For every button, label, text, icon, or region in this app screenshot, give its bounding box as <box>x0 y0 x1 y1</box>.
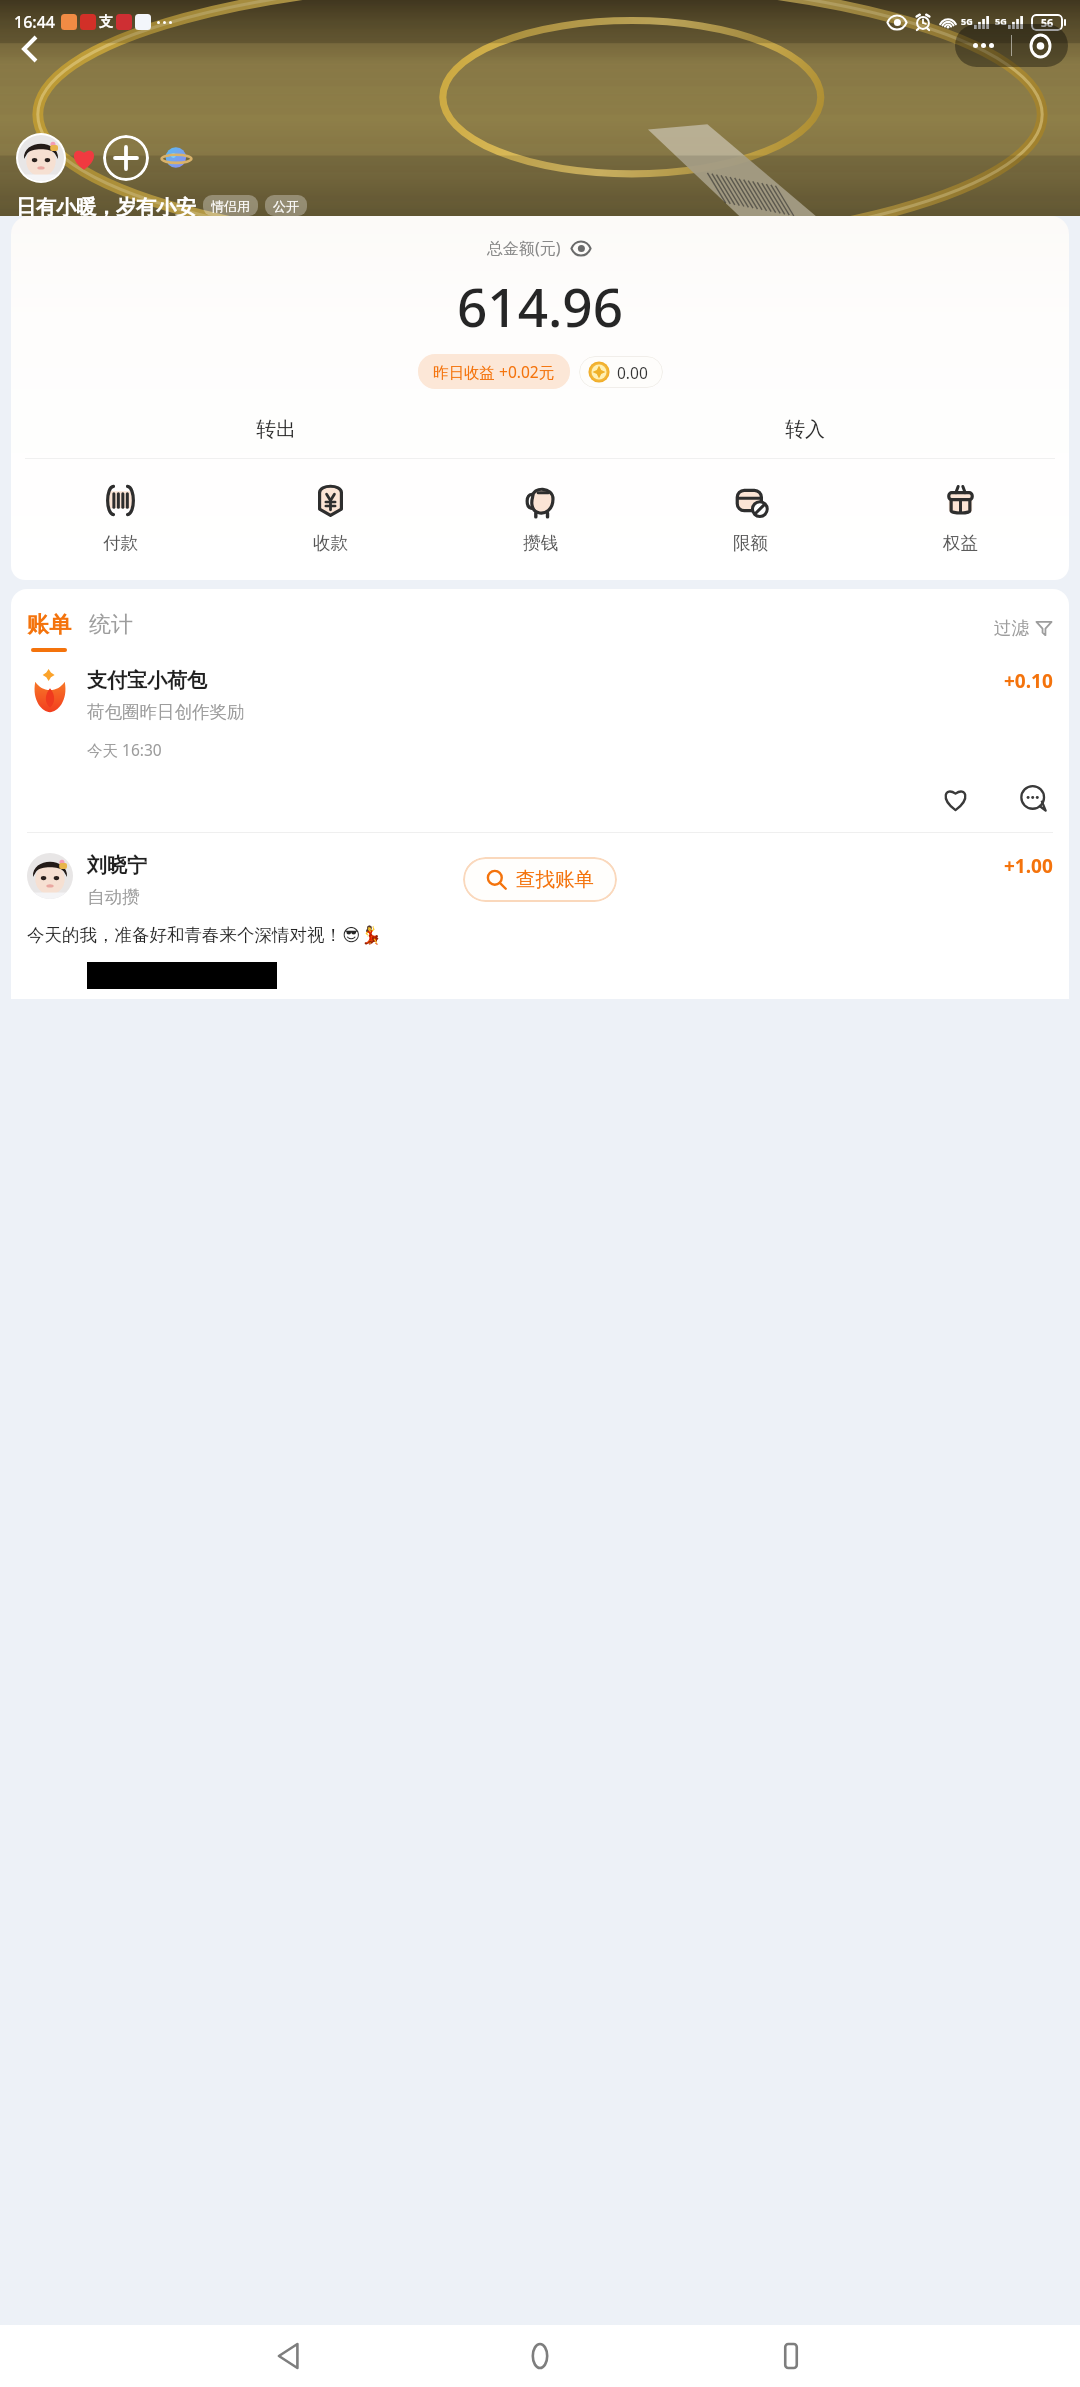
button[interactable]: Mini program menu <box>1012 24 1068 67</box>
button[interactable]: 收款 <box>225 479 435 556</box>
staticText: 614.96 <box>457 270 623 342</box>
button[interactable]: 统计 <box>89 611 133 652</box>
button[interactable]: 权益 <box>855 479 1065 556</box>
button[interactable]: 转入 <box>540 405 1069 453</box>
staticText: 账单 <box>27 611 71 639</box>
staticText: 过滤 <box>994 617 1029 639</box>
staticText: 情侣用 <box>211 198 250 213</box>
staticText: 自动攒 <box>87 886 140 908</box>
button[interactable]: Like <box>935 778 975 818</box>
staticText: 今天的我，准备好和青春来个深情对视！😎💃 <box>27 924 383 946</box>
button[interactable]: 昨日收益 +0.02元 <box>418 354 570 389</box>
button[interactable]: 账单 <box>27 611 71 652</box>
button[interactable]: 支付宝小荷包 <box>11 668 1069 833</box>
button[interactable]: 情侣用 <box>203 195 258 216</box>
button[interactable]: 刘晓宁 <box>11 853 1069 999</box>
button[interactable]: 攒钱 <box>435 479 645 556</box>
staticText: 限额 <box>733 532 768 554</box>
button[interactable]: 付款 <box>15 479 225 556</box>
button[interactable]: Recent apps <box>762 2327 820 2385</box>
staticText: 今天 16:30 <box>87 739 162 760</box>
button[interactable]: Home <box>511 2327 569 2385</box>
staticText: 转出 <box>256 417 296 442</box>
staticText: 公开 <box>273 198 299 213</box>
staticText: +0.10 <box>1004 668 1053 694</box>
staticText: 5G <box>961 15 973 27</box>
button[interactable]: 限额 <box>645 479 855 556</box>
staticText: 支付宝小荷包 <box>87 668 207 693</box>
button[interactable]: Comment <box>1013 778 1053 818</box>
button[interactable]: Add <box>103 135 149 181</box>
button[interactable]: Back <box>7 26 53 72</box>
staticText: 查找账单 <box>516 867 594 892</box>
staticText: 收款 <box>313 532 348 554</box>
button[interactable]: 公开 <box>265 195 307 216</box>
staticText: 转入 <box>785 417 825 442</box>
staticText: 日有小暖，岁有小安 <box>16 195 196 216</box>
staticText: 56 <box>1041 16 1054 30</box>
staticText: 荷包圈昨日创作奖励 <box>87 701 245 723</box>
button[interactable]: 过滤 <box>994 617 1053 652</box>
staticText: 付款 <box>103 532 138 554</box>
staticText: +1.00 <box>1004 853 1053 879</box>
button[interactable]: Back <box>260 2327 318 2385</box>
staticText: 权益 <box>943 532 978 554</box>
button[interactable]: 0.00 <box>579 356 663 388</box>
button[interactable]: 转出 <box>11 405 540 453</box>
staticText: 统计 <box>89 611 133 639</box>
staticText: 刘晓宁 <box>87 853 147 878</box>
staticText: 总金额(元) <box>487 237 561 259</box>
button[interactable]: More options <box>955 24 1011 67</box>
staticText: 0.00 <box>617 362 648 383</box>
staticText: 16:44 <box>14 11 55 33</box>
button[interactable]: 查找账单 <box>463 857 617 902</box>
button[interactable]: Profile avatar <box>16 133 66 183</box>
button[interactable]: Toggle amount visibility <box>569 236 593 260</box>
staticText: 支 <box>99 13 113 31</box>
staticText: 昨日收益 +0.02元 <box>433 361 555 382</box>
staticText: 5G <box>995 15 1007 27</box>
staticText: 攒钱 <box>523 532 558 554</box>
